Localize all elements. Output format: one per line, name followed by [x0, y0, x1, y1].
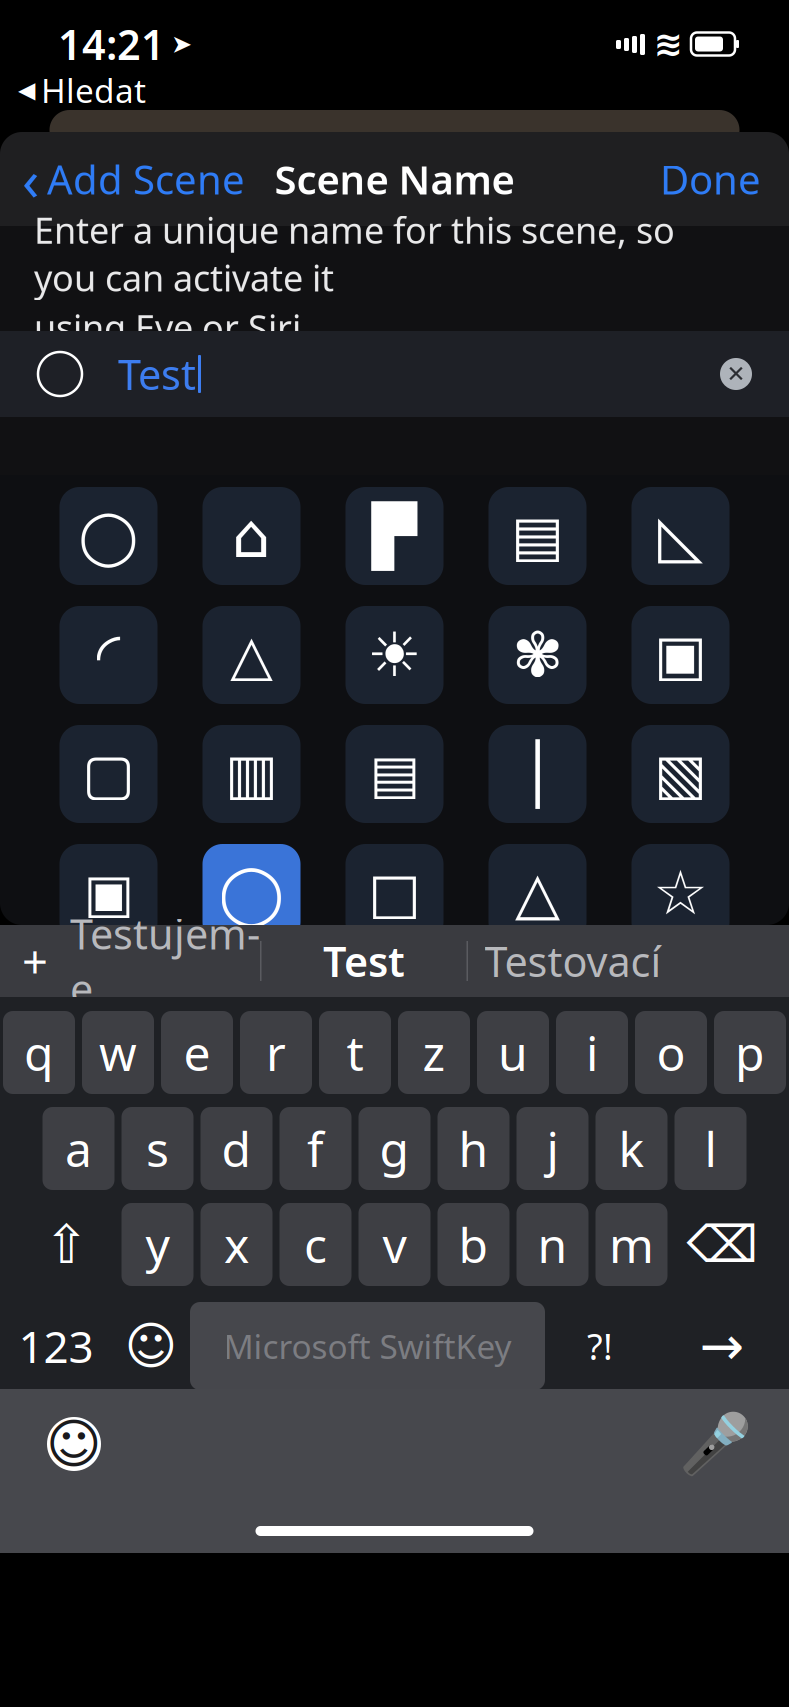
staticText: m [609, 1213, 654, 1276]
button[interactable]: Punctuation [545, 1302, 655, 1390]
button[interactable]: Brightness [345, 606, 443, 704]
button[interactable]: i [556, 1011, 628, 1094]
button[interactable]: Heater [631, 725, 729, 823]
button[interactable]: Done [632, 132, 789, 226]
button[interactable]: o [635, 1011, 707, 1094]
button[interactable]: n [516, 1203, 588, 1286]
staticText: Testovací [484, 934, 661, 988]
button[interactable]: q [3, 1011, 75, 1094]
button[interactable]: Speaker round [59, 725, 157, 823]
staticText: z [422, 1021, 445, 1084]
button[interactable]: Delete [674, 1203, 770, 1286]
button[interactable]: r [240, 1011, 312, 1094]
button[interactable]: Floor lamp [345, 487, 443, 585]
button[interactable]: b [437, 1203, 509, 1286]
button[interactable]: Table lamp [202, 487, 300, 585]
button[interactable]: s [121, 1107, 193, 1190]
button[interactable]: Pendant lamp [202, 606, 300, 704]
staticText: ▤ [369, 744, 419, 804]
staticText: │ [235, 982, 267, 1042]
staticText: y [145, 1213, 169, 1276]
button[interactable]: u [477, 1011, 549, 1094]
button[interactable]: Test [261, 925, 466, 997]
button[interactable]: Testovací [468, 925, 678, 997]
staticText: △ [515, 860, 560, 926]
staticText: ≋ [653, 24, 682, 64]
button[interactable]: 123 [0, 1302, 112, 1390]
button[interactable]: e [161, 1011, 233, 1094]
button[interactable]: Wall lamp [59, 606, 157, 704]
button[interactable]: Triangle [488, 844, 586, 942]
button[interactable]: Thermometer [488, 725, 586, 823]
staticText: → [699, 1316, 744, 1376]
button[interactable]: p [714, 1011, 786, 1094]
staticText: h [458, 1117, 488, 1180]
staticText: ☺ [46, 1414, 102, 1474]
button[interactable]: Tripod lamp [631, 487, 729, 585]
staticText: i [586, 1021, 598, 1084]
staticText: 123 [18, 1317, 93, 1375]
button[interactable]: t [319, 1011, 391, 1094]
button[interactable]: c [279, 1203, 351, 1286]
staticText: f [307, 1117, 324, 1180]
button[interactable]: Space [190, 1302, 545, 1390]
button[interactable]: Bulb [59, 487, 157, 585]
button[interactable]: x [200, 1203, 272, 1286]
staticText: Scene Name [274, 152, 514, 205]
button[interactable]: Printer [345, 725, 443, 823]
button[interactable]: Emoji [112, 1302, 190, 1390]
button[interactable]: Square [345, 844, 443, 942]
staticText: ◜ [96, 620, 120, 690]
button[interactable]: z [398, 1011, 470, 1094]
button[interactable]: Add word [0, 925, 70, 997]
button[interactable]: Shape [59, 963, 157, 1061]
button[interactable]: g [358, 1107, 430, 1190]
button[interactable]: k [595, 1107, 667, 1190]
staticText: 14:21 [58, 17, 165, 71]
button[interactable]: j [516, 1107, 588, 1190]
staticText: + [22, 931, 48, 991]
staticText: ▣ [654, 623, 707, 687]
button[interactable]: Fan [488, 606, 586, 704]
button[interactable]: l [674, 1107, 746, 1190]
staticText: l [704, 1117, 716, 1180]
staticText: ☺ [124, 1317, 177, 1375]
button[interactable]: Shape [488, 963, 586, 1061]
button[interactable]: Return [655, 1302, 789, 1390]
staticText: ◯ [218, 860, 284, 926]
button[interactable]: y [121, 1203, 193, 1286]
button[interactable]: Tower lamp [488, 487, 586, 585]
staticText: Microsoft SwiftKey [223, 1324, 511, 1368]
button[interactable]: Testujeme [70, 925, 260, 997]
staticText: ◠ [657, 982, 704, 1042]
button[interactable]: d [200, 1107, 272, 1190]
button[interactable]: v [358, 1203, 430, 1286]
staticText: d [221, 1117, 251, 1180]
staticText: ☆ [653, 858, 708, 928]
staticText: Hledat [41, 68, 146, 112]
button[interactable]: Emoji [26, 1396, 122, 1492]
button[interactable]: Outlet [59, 844, 157, 942]
staticText: △ [230, 623, 273, 687]
button[interactable]: Dictation [667, 1396, 763, 1492]
staticText: ▥ [225, 742, 278, 806]
button[interactable]: m [595, 1203, 667, 1286]
staticText: e [183, 1021, 210, 1084]
staticText: ▤ [511, 504, 564, 568]
button[interactable]: h [437, 1107, 509, 1190]
button[interactable]: Speaker [631, 606, 729, 704]
button[interactable]: Star [631, 844, 729, 942]
button[interactable]: f [279, 1107, 351, 1190]
staticText: t [346, 1021, 363, 1084]
button[interactable]: Circle [202, 844, 300, 942]
button[interactable]: Radio [202, 725, 300, 823]
button[interactable]: Shape [345, 963, 443, 1061]
button[interactable]: Shape [631, 963, 729, 1061]
button[interactable]: ‹ [0, 132, 267, 226]
button[interactable]: w [82, 1011, 154, 1094]
button[interactable]: Clear text [701, 331, 771, 417]
button[interactable]: Shift [18, 1203, 114, 1286]
staticText: ➤ [171, 30, 192, 58]
button[interactable]: a [42, 1107, 114, 1190]
button[interactable]: Shape [202, 963, 300, 1061]
